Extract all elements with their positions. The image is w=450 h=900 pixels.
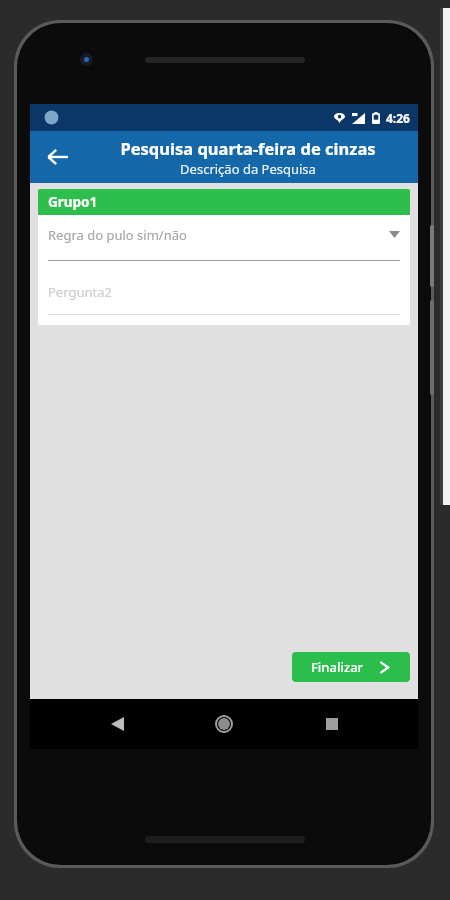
staticText: Pesquisa quarta-feira de cinzas xyxy=(120,137,376,159)
staticText: 4:26 xyxy=(386,110,410,126)
staticText: Regra do pulo sim/não xyxy=(48,226,187,244)
button[interactable]: Back xyxy=(36,135,80,179)
button[interactable]: Grupo1 xyxy=(38,189,410,215)
button[interactable]: Finalizar xyxy=(292,652,410,682)
button[interactable]: Recent apps xyxy=(311,703,353,745)
staticText: Finalizar xyxy=(311,658,364,676)
staticText: Descrição da Pesquisa xyxy=(180,160,316,178)
button[interactable]: Back xyxy=(96,703,138,745)
staticText: Pergunta2 xyxy=(48,283,112,301)
button[interactable]: Home xyxy=(203,703,245,745)
button[interactable]: Regra do pulo sim/não xyxy=(48,215,400,261)
button[interactable]: Pergunta2 xyxy=(48,275,400,315)
staticText: Grupo1 xyxy=(48,193,98,211)
